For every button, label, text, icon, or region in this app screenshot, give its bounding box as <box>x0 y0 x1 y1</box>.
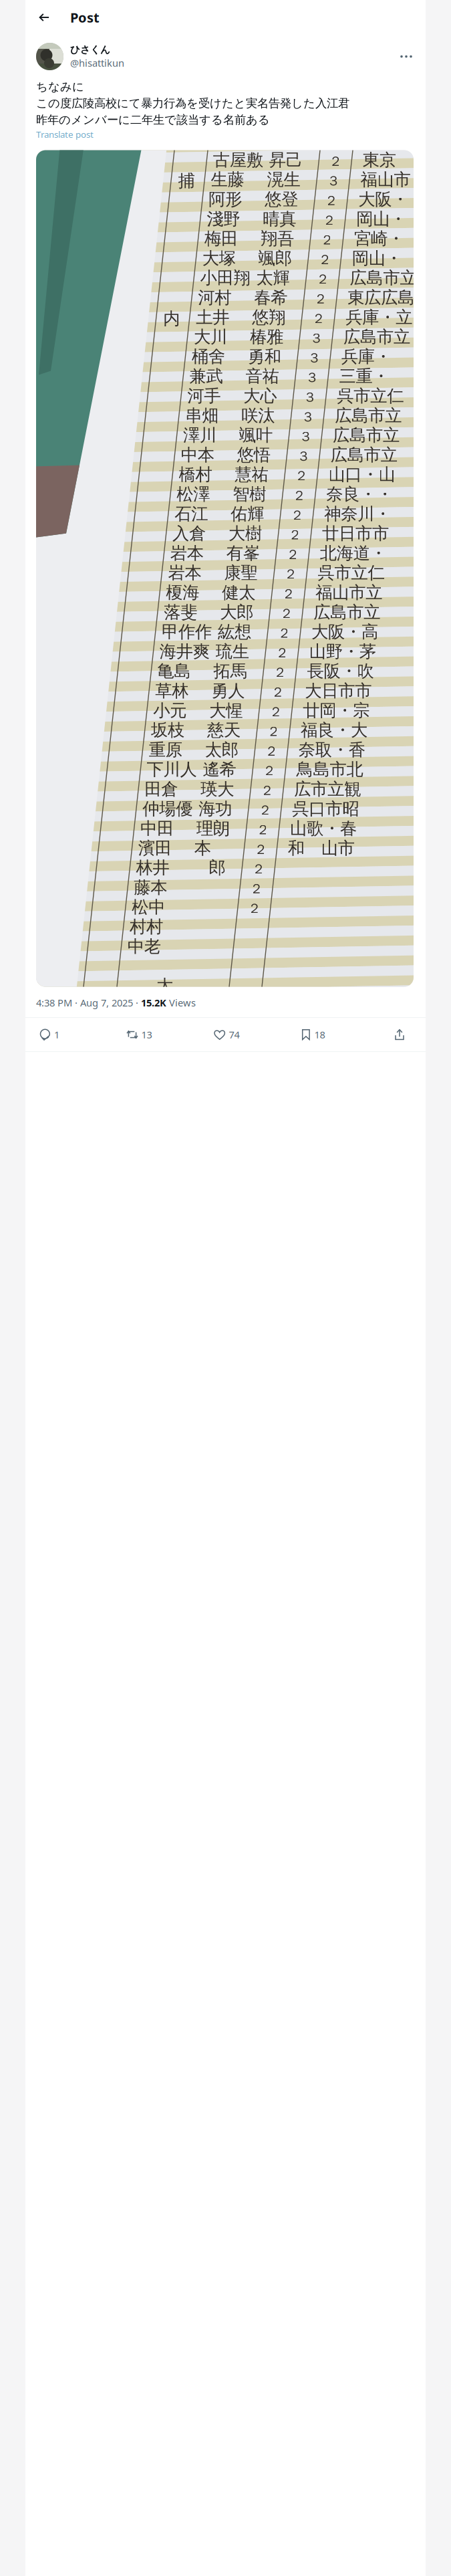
staticText: 山 <box>332 582 349 603</box>
staticText: 野 <box>223 209 240 229</box>
staticText: 晴 <box>263 209 279 229</box>
staticText <box>114 760 131 782</box>
staticText: 峯 <box>243 543 260 564</box>
staticText: 太 <box>239 582 255 603</box>
staticText <box>118 720 135 743</box>
staticText: 佑 <box>231 503 247 524</box>
staticText: 春 <box>340 818 357 839</box>
staticText: 島 <box>398 287 415 308</box>
staticText: 颯 <box>239 425 256 446</box>
staticText <box>172 837 188 859</box>
staticText: 真 <box>279 209 296 229</box>
staticText: 仁 <box>368 562 385 583</box>
staticText: 大 <box>202 248 219 269</box>
staticText <box>159 955 175 977</box>
staticText: ２ <box>329 153 342 170</box>
staticText: 梅 <box>204 228 221 249</box>
staticText: 口 <box>309 798 325 819</box>
staticText: 大 <box>228 523 245 544</box>
staticText: 広 <box>294 779 311 800</box>
staticText: 悠 <box>265 189 282 210</box>
staticText: ２ <box>286 546 299 563</box>
staticText <box>178 778 195 800</box>
staticText: 田 <box>155 838 172 859</box>
staticText: 岡 <box>319 700 336 721</box>
staticText: 田 <box>145 779 161 800</box>
staticText: ・ <box>362 464 379 485</box>
staticText <box>116 740 133 762</box>
staticText: 市 <box>334 562 351 583</box>
staticText: 呉 <box>337 386 354 406</box>
staticText <box>97 917 114 939</box>
staticText: ・ <box>360 484 376 505</box>
staticText <box>167 876 184 899</box>
button[interactable]: Image <box>36 150 414 987</box>
staticText: 大 <box>305 680 322 701</box>
staticText: ・ <box>392 189 409 210</box>
button[interactable]: Reply <box>39 1022 106 1047</box>
staticText: 老 <box>144 936 161 957</box>
staticText <box>208 503 225 525</box>
staticText: 仁 <box>387 386 404 406</box>
staticText: 井 <box>153 857 169 878</box>
staticText: 野 <box>326 641 343 662</box>
staticText: 遙 <box>203 759 220 780</box>
staticText: 想 <box>234 621 251 642</box>
staticText <box>236 247 252 270</box>
button[interactable]: Repost <box>127 1022 193 1047</box>
staticText: 山 <box>379 464 395 485</box>
staticText: 川 <box>210 327 227 347</box>
staticText: ２ <box>269 704 282 720</box>
staticText: 廿 <box>322 523 339 544</box>
staticText <box>238 227 254 250</box>
staticText: 桶 <box>192 346 208 367</box>
button[interactable]: Bookmark <box>301 1022 368 1047</box>
staticText: Translate post <box>36 128 94 140</box>
button[interactable]: Share <box>388 1022 411 1047</box>
staticText: 呉 <box>292 798 309 819</box>
staticText: ２ <box>250 881 263 897</box>
staticText: 山 <box>377 169 394 190</box>
staticText: 山 <box>321 838 338 859</box>
staticText: ２ <box>316 271 329 288</box>
staticText: 中 <box>148 897 165 918</box>
staticText: 作 <box>178 621 195 642</box>
staticText: 市 <box>364 445 381 465</box>
staticText: ・ <box>334 720 351 741</box>
staticText: ２ <box>256 822 270 838</box>
staticText <box>221 385 237 407</box>
staticText: 翔 <box>234 268 250 288</box>
staticText: ３ <box>299 428 312 445</box>
staticText: ３ <box>301 409 314 425</box>
staticText: ２ <box>314 291 327 307</box>
staticText <box>142 504 158 527</box>
button[interactable]: Translate post <box>25 127 426 143</box>
staticText: 口 <box>345 464 362 485</box>
button[interactable]: Profile photo <box>36 43 63 70</box>
staticText: 広 <box>331 445 347 465</box>
button[interactable]: Like <box>214 1022 281 1047</box>
staticText: 心 <box>260 386 277 406</box>
staticText: 立 <box>394 327 410 347</box>
staticText <box>242 188 259 211</box>
staticText <box>210 483 227 506</box>
button[interactable]: More <box>396 46 416 67</box>
staticText: 74 <box>229 1028 239 1041</box>
staticText: 阪 <box>324 661 340 682</box>
staticText: 樹 <box>249 484 266 505</box>
staticText: 大 <box>243 386 260 406</box>
staticText: 天 <box>224 720 240 741</box>
button[interactable]: ひさくん <box>63 44 124 69</box>
staticText: 優 <box>176 798 192 819</box>
staticText: 橋 <box>179 464 196 485</box>
staticText <box>152 406 169 428</box>
staticText: ・ <box>343 641 359 662</box>
staticText: 元 <box>170 700 186 721</box>
staticText: 昇 <box>269 150 286 170</box>
staticText: 歌 <box>307 818 323 839</box>
staticText: 枝 <box>168 720 184 741</box>
staticText: 庫 <box>358 346 375 367</box>
staticText: この度広陵高校にて暴力行為を受けたと実名告発した入江君 <box>36 96 349 110</box>
button[interactable]: Back <box>34 7 54 27</box>
staticText: 神 <box>324 503 341 524</box>
